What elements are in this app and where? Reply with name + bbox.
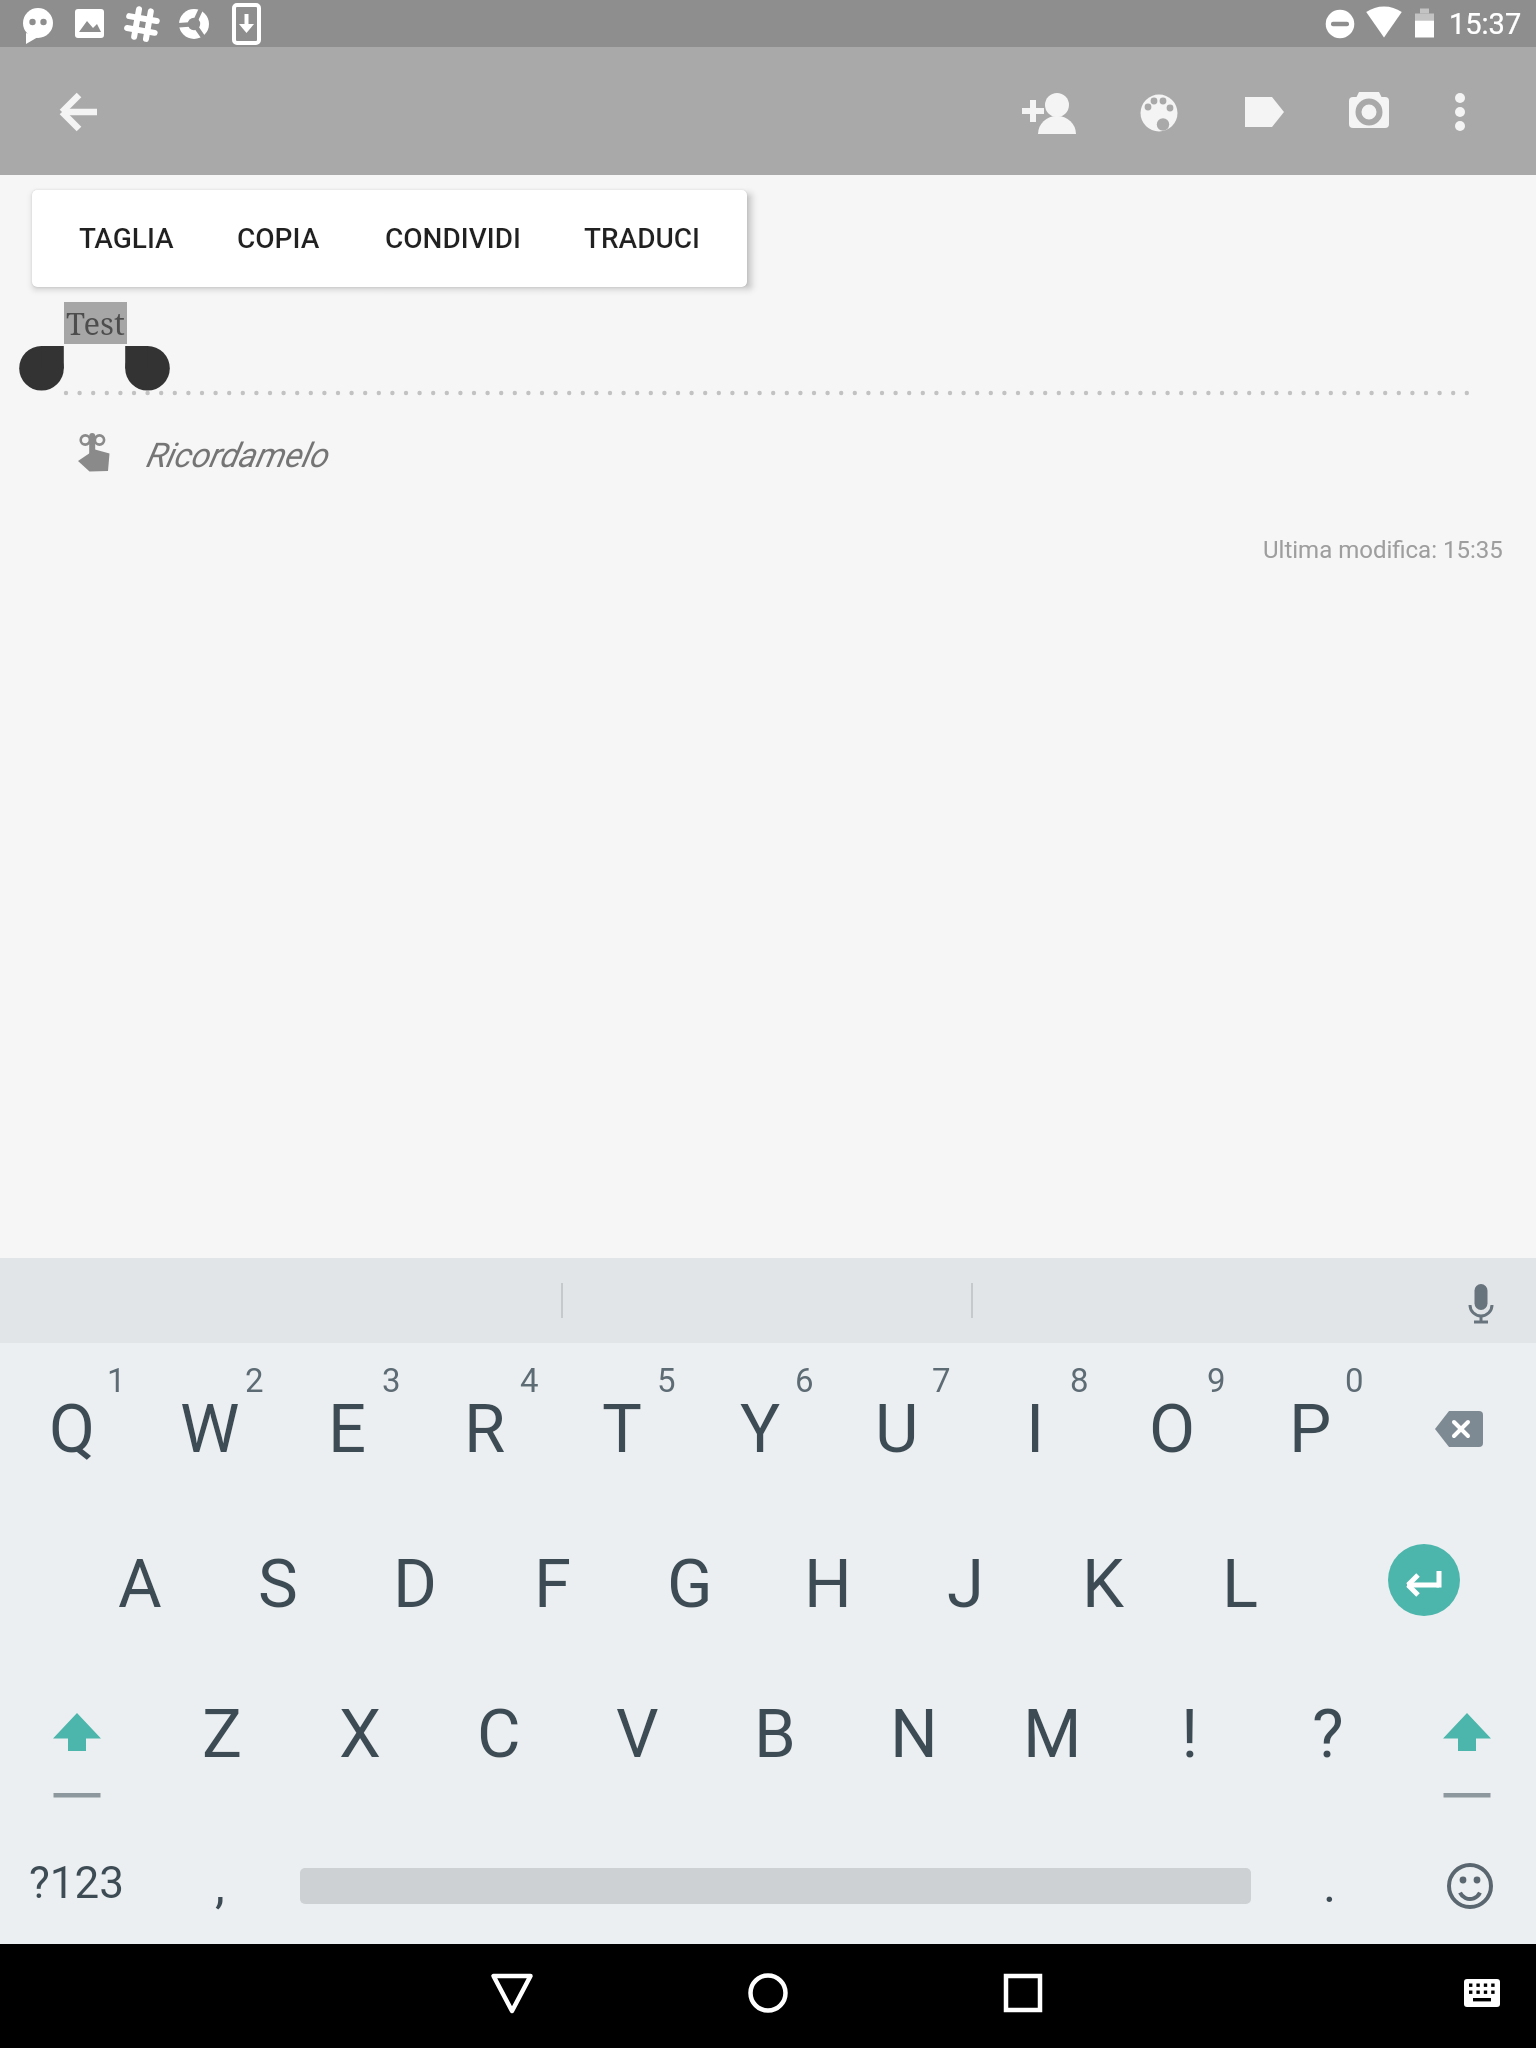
staticText: N xyxy=(890,1695,938,1774)
staticText: Y xyxy=(740,1390,781,1469)
staticText: J xyxy=(947,1545,984,1624)
staticText: . xyxy=(1323,1856,1337,1915)
button[interactable]: G xyxy=(625,1514,755,1654)
button[interactable] xyxy=(1232,80,1296,144)
button[interactable] xyxy=(1127,80,1191,144)
button[interactable] xyxy=(983,1953,1063,2033)
staticText: E xyxy=(328,1390,367,1469)
staticText: U xyxy=(875,1390,919,1469)
staticText: G xyxy=(667,1545,713,1624)
staticText: T xyxy=(602,1390,642,1469)
staticText: S xyxy=(258,1545,298,1624)
button[interactable]: F xyxy=(488,1514,618,1654)
button[interactable] xyxy=(1379,1535,1469,1625)
staticText: ! xyxy=(1181,1695,1199,1774)
staticText: O xyxy=(1149,1390,1196,1469)
staticText: W xyxy=(180,1390,240,1469)
staticText: TRADUCI xyxy=(584,222,700,255)
button[interactable] xyxy=(1337,80,1401,144)
staticText: H xyxy=(804,1545,852,1624)
button[interactable] xyxy=(1015,80,1079,144)
staticText: L xyxy=(1222,1545,1259,1624)
button[interactable] xyxy=(1414,1384,1504,1474)
button[interactable]: S xyxy=(213,1514,343,1654)
button[interactable]: B xyxy=(710,1664,840,1804)
staticText: P xyxy=(1289,1390,1332,1469)
staticText: I xyxy=(1026,1390,1045,1469)
button[interactable]: TAGLIA xyxy=(32,190,221,287)
staticText: 8 xyxy=(1070,1361,1089,1400)
staticText: Test xyxy=(66,302,125,344)
staticText: Ricordamelo xyxy=(145,435,327,475)
button[interactable]: , xyxy=(155,1815,285,1955)
staticText: 9 xyxy=(1207,1361,1226,1400)
staticText: 0 xyxy=(1345,1361,1364,1400)
button[interactable]: ?123 xyxy=(11,1813,141,1953)
staticText: V xyxy=(616,1695,659,1774)
button[interactable]: . xyxy=(1265,1815,1395,1955)
button[interactable]: M xyxy=(987,1664,1117,1804)
button[interactable] xyxy=(22,1679,132,1789)
staticText: 7 xyxy=(932,1361,951,1400)
button[interactable]: P xyxy=(1245,1359,1375,1499)
button[interactable]: C xyxy=(434,1664,564,1804)
staticText: , xyxy=(215,1856,225,1915)
button[interactable]: ! xyxy=(1125,1664,1255,1804)
staticText: 1 xyxy=(107,1361,126,1400)
button[interactable]: Ricordamelo xyxy=(40,419,460,494)
button[interactable]: X xyxy=(295,1664,425,1804)
staticText: 3 xyxy=(382,1361,401,1400)
button[interactable] xyxy=(1428,80,1492,144)
button[interactable]: H xyxy=(763,1514,893,1654)
staticText: Ultima modifica: 15:35 xyxy=(1263,536,1503,564)
button[interactable]: L xyxy=(1175,1514,1305,1654)
staticText: Z xyxy=(202,1695,243,1774)
staticText: Q xyxy=(49,1390,96,1469)
staticText: X xyxy=(339,1695,382,1774)
button[interactable] xyxy=(1435,1851,1505,1921)
button[interactable]: CONDIVIDI xyxy=(358,190,547,287)
staticText: D xyxy=(393,1545,437,1624)
button[interactable] xyxy=(472,1953,552,2033)
button[interactable]: N xyxy=(849,1664,979,1804)
staticText: 5 xyxy=(657,1361,676,1400)
button[interactable]: R xyxy=(420,1359,550,1499)
staticText: C xyxy=(477,1695,521,1774)
button[interactable]: I xyxy=(970,1359,1100,1499)
button[interactable]: Z xyxy=(157,1664,287,1804)
button[interactable]: A xyxy=(75,1514,205,1654)
button[interactable]: U xyxy=(832,1359,962,1499)
button[interactable] xyxy=(1024,1258,1536,1343)
staticText: F xyxy=(534,1545,572,1624)
button[interactable]: T xyxy=(557,1359,687,1499)
button[interactable]: O xyxy=(1107,1359,1237,1499)
button[interactable] xyxy=(1412,1679,1522,1789)
button[interactable]: Q xyxy=(7,1359,137,1499)
button[interactable]: K xyxy=(1038,1514,1168,1654)
button[interactable] xyxy=(48,80,112,144)
button[interactable]: W xyxy=(145,1359,275,1499)
button[interactable]: J xyxy=(900,1514,1030,1654)
button[interactable]: Y xyxy=(695,1359,825,1499)
staticText: A xyxy=(118,1545,162,1624)
staticText: 2 xyxy=(245,1361,264,1400)
button[interactable]: TRADUCI xyxy=(547,190,736,287)
button[interactable]: ? xyxy=(1263,1664,1393,1804)
button[interactable]: D xyxy=(350,1514,480,1654)
staticText: ? xyxy=(1312,1695,1344,1774)
staticText: TAGLIA xyxy=(79,222,174,255)
staticText: 15:37 xyxy=(1449,7,1522,41)
button[interactable]: V xyxy=(572,1664,702,1804)
button[interactable] xyxy=(1447,1958,1517,2028)
button[interactable]: COPIA xyxy=(184,190,373,287)
button[interactable]: E xyxy=(282,1359,412,1499)
staticText: ?123 xyxy=(29,1857,124,1909)
staticText: 4 xyxy=(520,1361,539,1400)
button[interactable] xyxy=(728,1953,808,2033)
staticText: M xyxy=(1023,1695,1082,1774)
staticText: K xyxy=(1082,1545,1125,1624)
staticText: 6 xyxy=(795,1361,814,1400)
